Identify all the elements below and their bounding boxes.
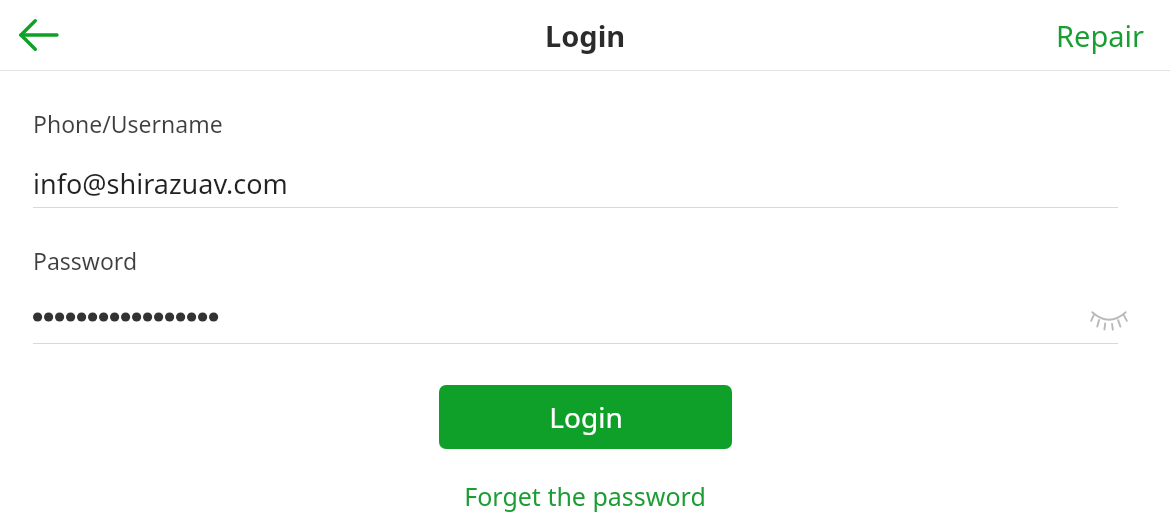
button[interactable]: Show password (1081, 300, 1137, 334)
staticText: Login (549, 398, 623, 436)
button[interactable]: Repair (1030, 0, 1170, 70)
button[interactable]: info@shirazuav.com (0, 165, 1170, 197)
staticText: Forget the password (464, 479, 706, 513)
button[interactable]: Login (439, 385, 732, 449)
staticText: Password (33, 245, 138, 276)
staticText: Repair (1056, 16, 1144, 55)
staticText: info@shirazuav.com (33, 165, 288, 197)
button[interactable]: Back (0, 0, 78, 70)
staticText: Login (545, 16, 626, 55)
staticText: Phone/Username (33, 108, 223, 139)
button[interactable]: Forget the password (450, 473, 720, 519)
